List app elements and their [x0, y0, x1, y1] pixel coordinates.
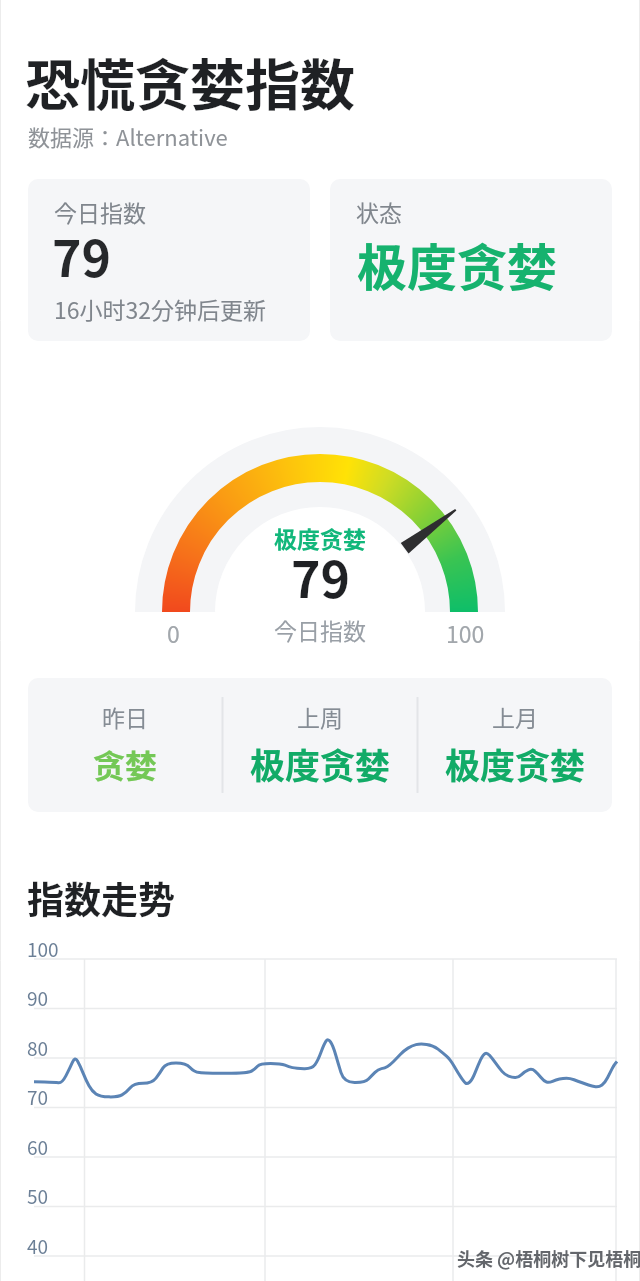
staticText: 数据源：Alternative — [28, 120, 228, 152]
staticText: 今日指数 — [54, 195, 146, 228]
staticText: 指数走势 — [27, 871, 175, 925]
staticText: 50 — [27, 1182, 49, 1210]
button[interactable] — [28, 678, 612, 812]
staticText: 今日指数 — [274, 613, 366, 646]
staticText: 90 — [27, 984, 49, 1012]
staticText: 0 — [167, 616, 180, 649]
staticText: 昨日 — [102, 700, 148, 733]
staticText: 79 — [52, 219, 111, 291]
staticText: 100 — [446, 616, 485, 649]
staticText: 上周 — [297, 700, 343, 733]
staticText: 70 — [27, 1083, 49, 1111]
staticText: 100 — [27, 935, 59, 963]
button[interactable] — [330, 179, 612, 341]
button[interactable] — [28, 179, 310, 341]
staticText: 极度贪婪 — [274, 521, 366, 554]
staticText: 16小时32分钟后更新 — [54, 292, 267, 325]
staticText: 60 — [27, 1133, 49, 1161]
staticText: 79 — [291, 540, 350, 612]
staticText: 极度贪婪 — [250, 738, 391, 789]
staticText: 极度贪婪 — [445, 738, 586, 789]
staticText: 状态 — [356, 195, 402, 228]
staticText: 恐慌贪婪指数 — [25, 41, 356, 121]
staticText: 贪婪 — [93, 741, 158, 787]
staticText: 极度贪婪 — [357, 228, 557, 300]
staticText: 头条 @梧桐树下见梧桐 — [457, 1245, 640, 1271]
staticText: 40 — [27, 1232, 49, 1260]
staticText: 80 — [27, 1034, 49, 1062]
staticText: 上月 — [492, 700, 538, 733]
